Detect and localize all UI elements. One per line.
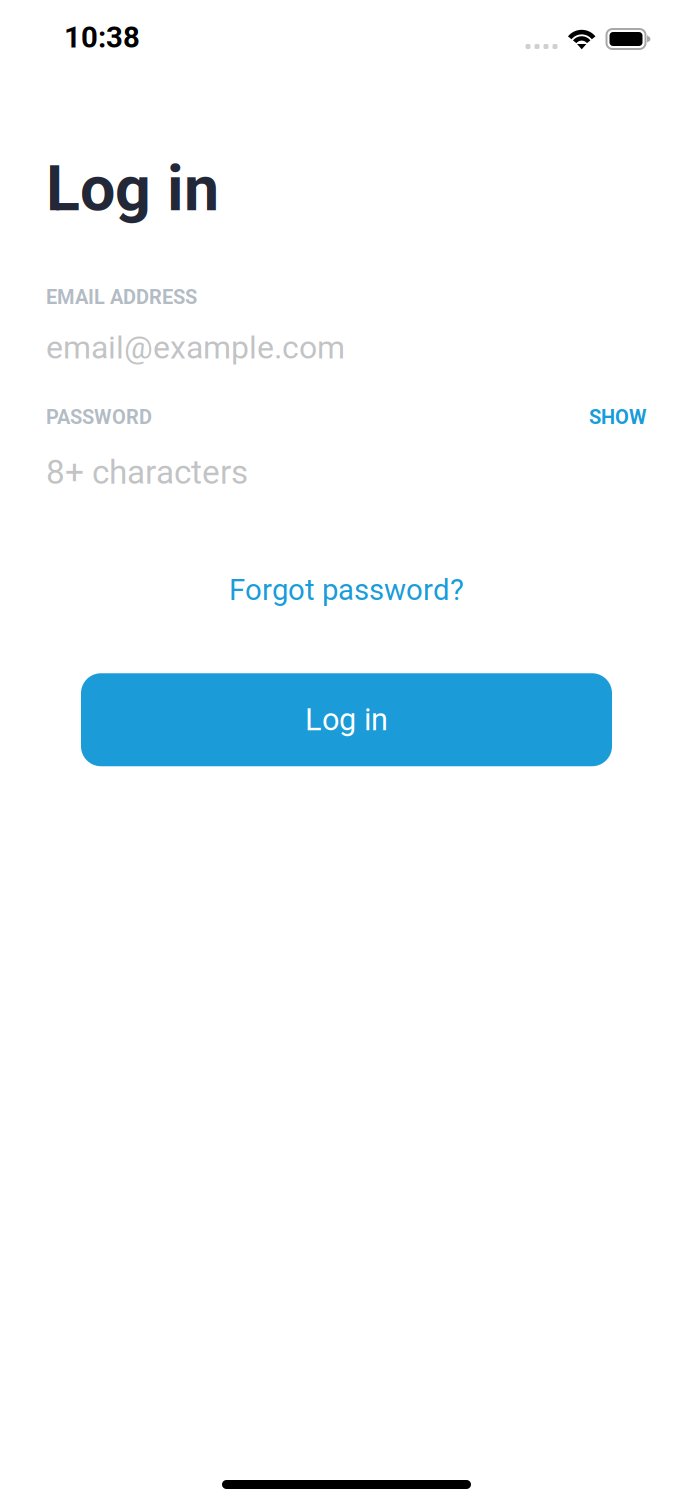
staticText: PASSWORD [46,405,152,429]
staticText: Log in [305,702,388,738]
button[interactable]: Email address [0,329,693,366]
staticText: SHOW [589,405,647,429]
button[interactable]: Password [0,453,693,492]
staticText: 10:38 [64,20,140,55]
staticText: EMAIL ADDRESS [46,285,197,309]
staticText: Log in [46,152,219,225]
button[interactable]: Log in [81,673,612,766]
button[interactable]: SHOW [569,401,647,433]
staticText: email@example.com [46,329,345,366]
button[interactable]: Forgot password? [0,563,693,617]
staticText: 8+ characters [46,453,248,492]
staticText: Forgot password? [229,573,464,607]
